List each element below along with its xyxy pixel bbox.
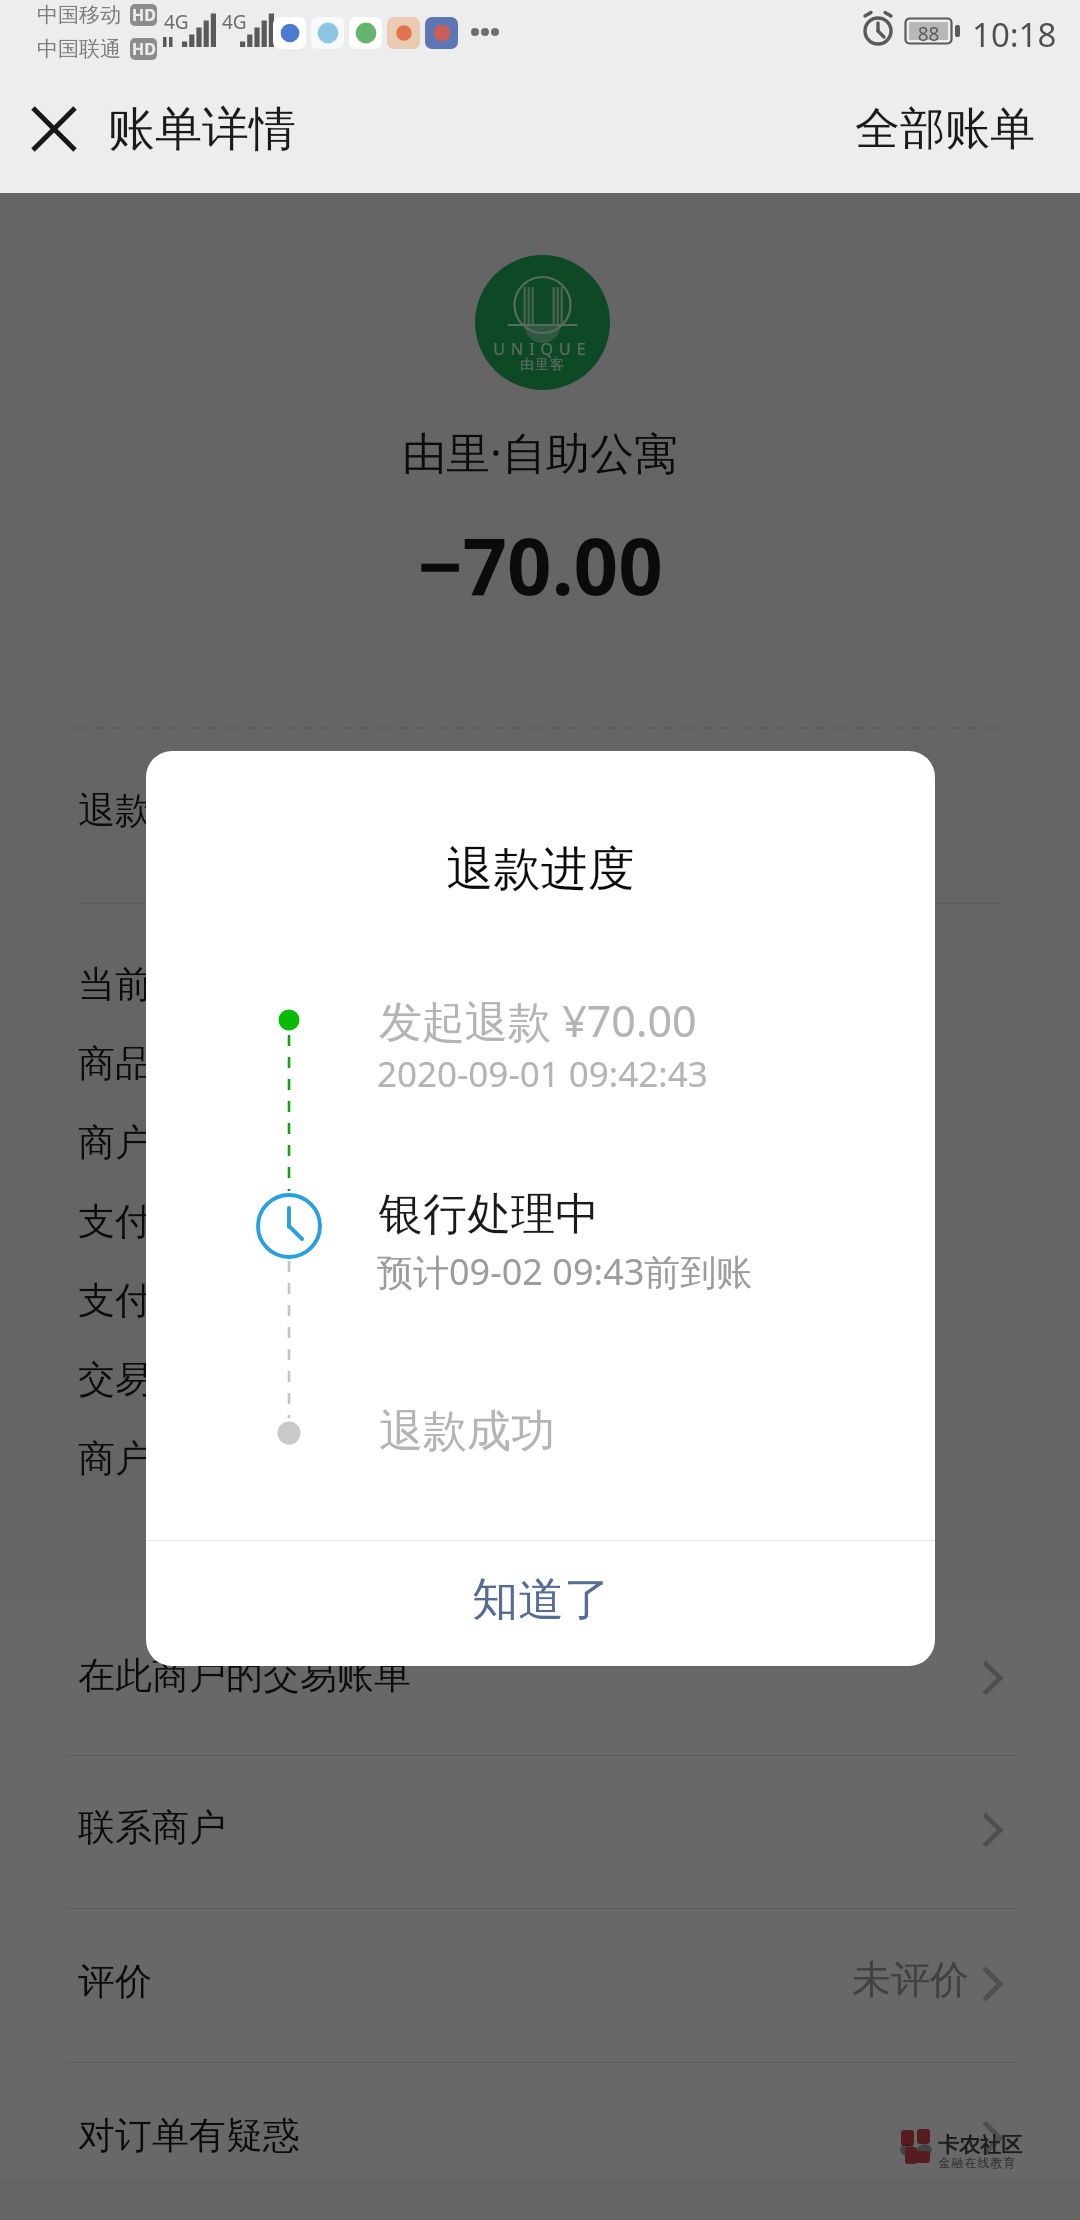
button[interactable]: 在此商户的交易账单 [0,1636,1080,1714]
staticText: UNIQUE [475,338,610,360]
staticText: 4G [222,9,247,35]
staticText: 退款成功 [379,1404,555,1459]
button[interactable]: 对订单有疑惑 [0,2096,1080,2174]
staticText: 2020-09-01 09:42:43 [377,1050,708,1098]
button[interactable]: 交易单号 [0,1340,1080,1418]
staticText: 在此商户的交易账单 [78,1652,411,1699]
staticText: 商户单号 [78,1435,226,1482]
button[interactable]: 知道了 [146,1537,935,1662]
staticText: 由里客 [475,356,610,374]
staticText: 金融在线教育 [938,2155,1016,2170]
staticText: 中国移动 [37,2,121,28]
button[interactable]: 支付时间 [0,1261,1080,1339]
staticText: 10:18 [972,12,1057,57]
button[interactable]: 全部账单 [855,101,1035,158]
button[interactable]: 商户全称 [0,1103,1080,1181]
staticText: 支付方式 [78,1198,226,1245]
staticText: 中国联通 [37,36,121,62]
button[interactable]: 退款金额 [0,771,1080,849]
staticText: 当前状态 [78,961,226,1008]
staticText: 交易单号 [78,1356,226,1403]
staticText: 评价 [78,1958,152,2005]
staticText: 由里·自助公寓 [0,422,1080,482]
staticText: 商户全称 [78,1119,226,1166]
button[interactable]: 商品 [0,1024,1080,1102]
staticText: 对订单有疑惑 [78,2112,300,2159]
staticText: 全部账单 [855,101,1035,158]
staticText: 退款金额 [78,787,226,834]
staticText: 联系商户 [78,1804,226,1851]
staticText: 发起退款 ¥70.00 [379,991,697,1050]
button[interactable]: Close [19,96,89,162]
staticText: 卡农社区 [938,2132,1022,2158]
staticText: 商品 [78,1040,152,1087]
button[interactable]: 评价 [0,1942,1080,2020]
button[interactable]: 当前状态 [0,945,1080,1023]
staticText: 88 [905,21,952,47]
staticText: 退款进度 [146,840,935,899]
staticText: 4G [164,9,189,35]
staticText: HD [132,4,156,26]
button[interactable]: 联系商户 [0,1788,1080,1866]
button[interactable]: 支付方式 [0,1182,1080,1260]
button[interactable]: Dismiss dialog [0,193,1080,2220]
staticText: 预计09-02 09:43前到账 [377,1247,753,1296]
staticText: −70.00 [0,512,1080,618]
button[interactable]: 商户单号 [0,1419,1080,1497]
staticText: 银行处理中 [379,1187,599,1242]
staticText: HD [132,38,156,60]
staticText: 知道了 [472,1571,610,1629]
staticText: 支付时间 [78,1277,226,1324]
staticText: 未评价 [700,1955,969,2004]
staticText: 账单详情 [108,100,296,159]
